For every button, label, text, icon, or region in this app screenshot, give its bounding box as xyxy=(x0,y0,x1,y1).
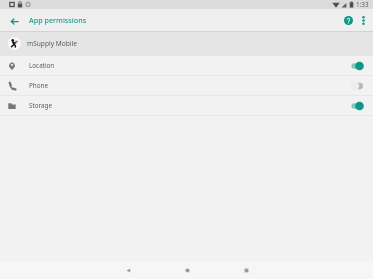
button[interactable]: Navigate up xyxy=(4,10,24,30)
button[interactable]: On xyxy=(350,60,364,72)
button[interactable]: On xyxy=(350,100,364,112)
button[interactable]: Back xyxy=(116,262,140,279)
button[interactable]: More options xyxy=(355,12,371,28)
staticText: App permissions xyxy=(29,15,87,25)
button[interactable]: Off xyxy=(350,80,364,92)
button[interactable]: Storage xyxy=(0,96,373,115)
staticText: Storage xyxy=(29,101,52,110)
button[interactable]: Phone xyxy=(0,76,373,95)
staticText: 1:33 xyxy=(356,0,369,9)
staticText: mSupply Mobile xyxy=(27,39,77,48)
staticText: Location xyxy=(29,61,55,70)
button[interactable]: Home xyxy=(175,262,199,279)
staticText: Phone xyxy=(29,81,48,90)
button[interactable]: Help xyxy=(321,11,351,29)
button[interactable]: mSupply Mobile xyxy=(0,32,373,55)
button[interactable]: Location xyxy=(0,56,373,75)
button[interactable]: Recent apps xyxy=(234,262,258,279)
